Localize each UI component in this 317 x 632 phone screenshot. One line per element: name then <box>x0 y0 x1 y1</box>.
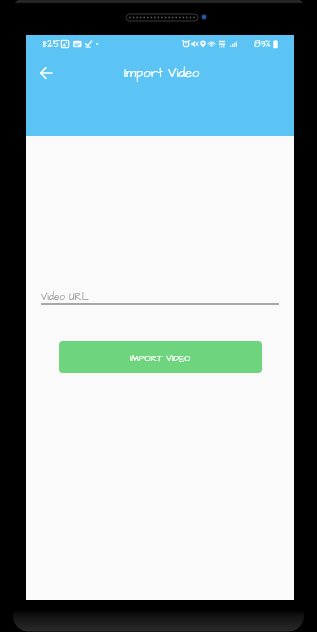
staticText: Import Video <box>124 64 200 82</box>
staticText: IMPORT VIDEO <box>130 352 191 365</box>
staticText: 83% <box>254 37 271 51</box>
staticText: 11:25 <box>43 37 61 51</box>
staticText: Video URL <box>41 290 89 304</box>
button[interactable]: Back <box>34 61 58 85</box>
button[interactable]: IMPORT VIDEO <box>59 341 262 373</box>
